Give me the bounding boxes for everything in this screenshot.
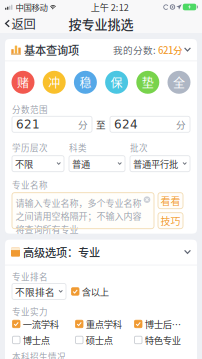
staticText: 保 [111,74,123,91]
staticText: 批次 [130,141,148,154]
staticText: 博士后流动站 [145,317,182,331]
button[interactable]: 垫 [137,71,159,93]
staticText: 请输入专业名称，多个专业名称之间请用空格隔开；不输入内容将查询所有专业 [15,196,141,236]
staticText: 中国移动 [13,1,49,13]
staticText: 分 [176,117,186,131]
button[interactable]: 不限 [12,156,64,172]
staticText: 高级选项：专业 [20,244,100,260]
button[interactable]: 不限排名 [12,283,66,299]
staticText: 按专业挑选 [68,14,133,33]
button[interactable]: 含以上 [71,287,109,296]
staticText: 621分 [158,43,183,57]
staticText: 硕士点 [86,333,113,347]
button[interactable]: 硕士点 [75,335,113,344]
button[interactable]: 博士点 [12,335,50,344]
staticText: 专业排名 [12,270,48,283]
button[interactable]: 技巧 [158,213,183,229]
staticText: 技巧 [160,213,180,228]
button[interactable]: 一流学科 [12,319,59,328]
button[interactable]: 普通 [69,156,125,172]
staticText [182,4,183,10]
button[interactable]: 博士后流动站 [134,319,182,328]
staticText: 重点学科 [86,317,122,331]
staticText: 我的分数: [113,43,158,57]
staticText: 624 [114,117,138,131]
button[interactable]: 看看 [158,193,183,209]
staticText: 冲 [48,74,60,91]
staticText: 返回 [12,15,36,32]
staticText [175,4,176,10]
staticText: 至 [96,117,106,131]
button[interactable]: 重点学科 [75,319,122,328]
staticText: 普通平行批 [133,157,178,170]
staticText: 博士点 [23,333,50,347]
staticText: 专业名称 [12,178,48,191]
staticText: 不限 [15,157,33,170]
button[interactable]: 特色专业 [134,335,181,344]
staticText: 621 [16,117,40,131]
staticText: 稳 [79,74,91,91]
staticText [169,4,170,10]
button[interactable]: 全 [168,71,190,93]
staticText: 基本查询项 [21,42,79,58]
staticText: 全 [173,74,185,91]
staticText: 学历层次 [12,141,48,154]
button[interactable]: 赌 [12,71,34,93]
button[interactable]: 普通平行批 [130,156,190,172]
button[interactable]: 保 [106,71,128,93]
staticText: 垫 [142,74,154,91]
staticText: 本科招生情况 [12,350,66,359]
staticText: 分 [78,117,88,131]
staticText: 科类 [69,141,87,154]
staticText: 特色专业 [145,333,181,347]
staticText: 赌 [17,74,29,91]
staticText: 专业实力 [12,305,48,318]
staticText: 普通 [72,157,90,170]
button[interactable]: 返回 [0,14,41,33]
button[interactable]: 稳 [74,71,96,93]
staticText: 分数范围 [12,103,48,115]
staticText: 含以上 [82,285,109,298]
staticText: 一流学科 [23,317,59,331]
staticText: 不限排名 [15,284,55,298]
staticText: 上午 2:12 [91,0,129,13]
button[interactable]: 冲 [43,71,65,93]
staticText: 看看 [160,193,180,208]
